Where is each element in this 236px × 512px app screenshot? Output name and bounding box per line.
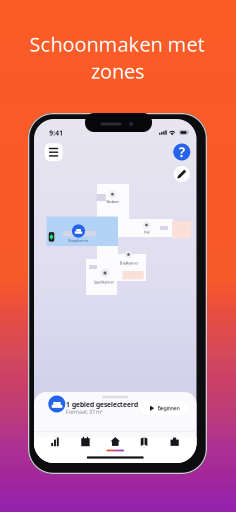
staticText: ? [179, 143, 185, 161]
staticText: Formaat: 37 m² [66, 408, 103, 415]
button[interactable]: Statistics [41, 433, 71, 455]
button[interactable]: Home [100, 433, 130, 455]
staticText: Badkamer [120, 260, 139, 265]
button[interactable]: Menu [45, 143, 62, 161]
staticText: Slaapkamer [68, 238, 89, 243]
button[interactable]: Store [160, 433, 190, 455]
button[interactable]: Map [130, 433, 160, 455]
staticText: Schoonmaken met [29, 31, 204, 57]
staticText: 1 gebied geselecteerd [66, 400, 138, 409]
staticText: Keuken [106, 199, 118, 204]
staticText: Speelkamer [93, 279, 114, 285]
button[interactable]: Help [173, 143, 190, 160]
button[interactable]: Edit map [174, 166, 190, 182]
staticText: Hal [143, 229, 149, 235]
staticText: zones [91, 58, 145, 84]
staticText: 9:41 [49, 128, 63, 137]
button[interactable]: Schedule [70, 433, 100, 455]
staticText: Beginnen [158, 405, 180, 412]
button[interactable]: Beginnen [141, 401, 188, 415]
